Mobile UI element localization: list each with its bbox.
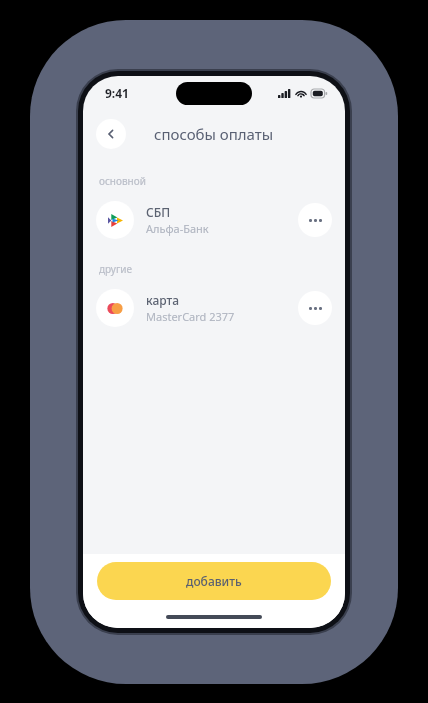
staticText: другие <box>99 262 133 276</box>
staticText: 9:41 <box>105 85 129 101</box>
button[interactable]: СБП <box>83 194 345 246</box>
staticText: MasterCard 2377 <box>146 309 235 324</box>
staticText: способы оплаты <box>154 124 274 144</box>
staticText: Альфа-Банк <box>146 221 209 236</box>
staticText: СБП <box>146 204 171 220</box>
staticText: основной <box>99 174 146 188</box>
staticText: карта <box>146 292 180 308</box>
button[interactable]: Ещё <box>298 291 332 325</box>
button[interactable]: Назад <box>96 119 126 149</box>
staticText: добавить <box>186 573 242 589</box>
button[interactable]: карта <box>83 282 345 334</box>
button[interactable]: Ещё <box>298 203 332 237</box>
button[interactable]: добавить <box>97 562 331 600</box>
